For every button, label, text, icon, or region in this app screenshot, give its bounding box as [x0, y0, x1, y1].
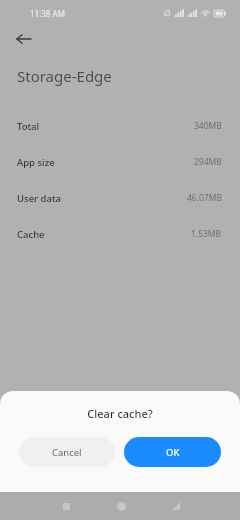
staticText: 46.07MB: [187, 192, 222, 204]
staticText: User data: [17, 192, 61, 205]
staticText: Cancel: [52, 446, 82, 459]
staticText: OK: [166, 446, 180, 459]
button[interactable]: OK: [124, 437, 221, 467]
staticText: Clear cache?: [0, 406, 240, 421]
button[interactable]: Back: [166, 496, 186, 516]
button[interactable]: Recent apps: [56, 496, 76, 516]
button[interactable]: Back: [13, 28, 35, 50]
staticText: 11:38 AM: [30, 8, 65, 19]
button[interactable]: Cancel: [19, 437, 115, 467]
button[interactable]: Total: [0, 108, 240, 144]
staticText: Storage-Edge: [17, 66, 112, 86]
button[interactable]: User data: [0, 180, 240, 216]
staticText: App size: [17, 156, 55, 169]
button[interactable]: App size: [0, 144, 240, 180]
staticText: 294MB: [194, 156, 222, 168]
staticText: 340MB: [194, 120, 222, 132]
button[interactable]: Home: [111, 496, 131, 516]
staticText: Cache: [17, 228, 45, 241]
staticText: Total: [17, 120, 40, 133]
button[interactable]: Cache: [0, 216, 240, 252]
staticText: 1.53MB: [191, 228, 222, 240]
